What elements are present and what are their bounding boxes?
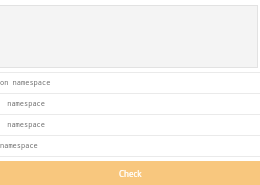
button[interactable]: namespace: [0, 136, 260, 156]
staticText: Check: [119, 168, 142, 179]
button[interactable]: Check: [0, 161, 260, 185]
staticText: namespace: [3, 120, 45, 130]
staticText: namespace: [0, 141, 38, 151]
button[interactable]: namespace: [0, 94, 260, 114]
staticText: namespace: [3, 99, 45, 109]
button[interactable]: namespace: [0, 115, 260, 135]
staticText: on namespace: [0, 78, 51, 88]
button[interactable]: on namespace: [0, 73, 260, 93]
